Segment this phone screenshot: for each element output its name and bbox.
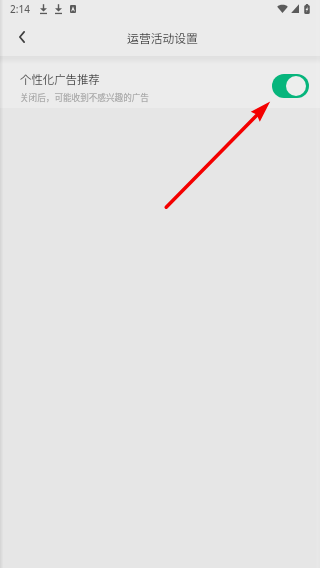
staticText: 个性化广告推荐 xyxy=(20,71,100,88)
staticText: 关闭后，可能收到不感兴趣的广告 xyxy=(20,91,149,103)
button[interactable]: 个性化广告推荐 xyxy=(0,56,320,108)
staticText: 运营活动设置 xyxy=(127,29,198,46)
button[interactable]: Personalised ad recommendation toggle xyxy=(272,74,309,98)
button[interactable]: Back xyxy=(5,20,38,53)
staticText: 2:14 xyxy=(10,2,30,16)
